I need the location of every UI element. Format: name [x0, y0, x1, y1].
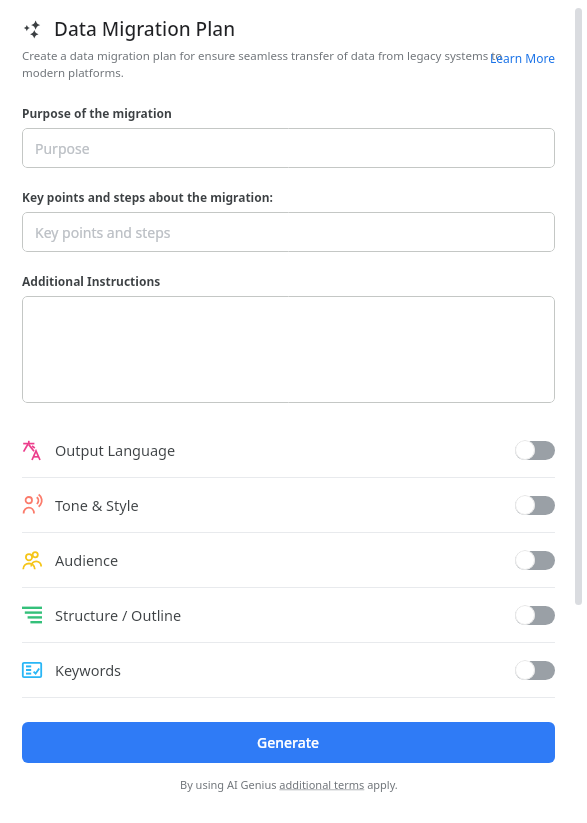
staticText: Generate: [257, 733, 320, 752]
button[interactable]: Tone & Style: [22, 478, 555, 532]
staticText: Create a data migration plan for ensure …: [22, 48, 503, 80]
staticText: Purpose: [35, 139, 90, 158]
button[interactable]: Generate: [22, 722, 555, 763]
button[interactable]: Toggle Audience: [515, 550, 555, 570]
staticText: Structure / Outline: [55, 605, 182, 625]
staticText: Key points and steps about the migration…: [22, 189, 273, 205]
button[interactable]: Toggle Structure / Outline: [515, 605, 555, 625]
button[interactable]: Learn More: [490, 50, 555, 66]
staticText: Key points and steps: [35, 223, 171, 242]
button[interactable]: Toggle Output Language: [515, 440, 555, 460]
button[interactable]: Key points and steps: [22, 212, 555, 252]
staticText: By using AI Genius additional terms appl…: [180, 777, 398, 792]
staticText: Additional Instructions: [22, 273, 161, 289]
button[interactable]: [22, 296, 555, 403]
button[interactable]: Keywords: [22, 643, 555, 697]
staticText: Audience: [55, 550, 119, 570]
button[interactable]: Output Language: [22, 423, 555, 477]
button[interactable]: Structure / Outline: [22, 588, 555, 642]
staticText: Data Migration Plan: [54, 16, 236, 42]
staticText: Learn More: [490, 50, 555, 66]
button[interactable]: Audience: [22, 533, 555, 587]
button[interactable]: Purpose: [22, 128, 555, 168]
button[interactable]: Toggle Tone & Style: [515, 495, 555, 515]
staticText: Tone & Style: [55, 495, 139, 515]
staticText: Output Language: [55, 440, 176, 460]
staticText: Purpose of the migration: [22, 105, 172, 121]
button[interactable]: By using AI Genius additional terms appl…: [180, 777, 398, 792]
button[interactable]: Toggle Keywords: [515, 660, 555, 680]
staticText: Keywords: [55, 660, 121, 680]
